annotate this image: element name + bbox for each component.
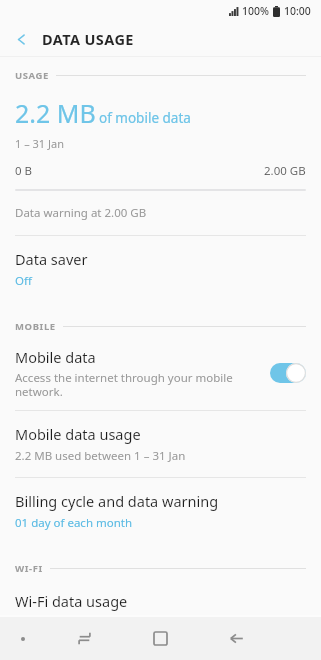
staticText: 01 day of each month — [15, 515, 133, 531]
staticText: Wi-Fi data usage — [15, 591, 128, 611]
staticText: Access the internet through your mobile … — [15, 370, 256, 399]
staticText: 10:00 — [284, 4, 311, 18]
button[interactable]: Home — [122, 617, 198, 660]
staticText: of mobile data — [99, 109, 191, 127]
staticText: Data saver — [15, 249, 88, 269]
button[interactable]: Mobile data — [0, 336, 321, 410]
button[interactable]: Back — [8, 25, 36, 53]
staticText: 1.5 GB used between 6 Dec 2018 – 3 Jan 2… — [15, 615, 259, 631]
button[interactable]: Data saver — [0, 236, 321, 302]
button[interactable]: Wi-Fi data usage — [0, 578, 321, 644]
staticText: 100% — [242, 4, 269, 18]
staticText: DATA USAGE — [42, 29, 134, 49]
button[interactable]: Billing cycle and data warning — [0, 478, 321, 544]
staticText: WI-FI — [15, 562, 43, 575]
staticText: 0 B — [15, 163, 33, 179]
staticText: 2.2 MB used between 1 – 31 Jan — [15, 448, 186, 464]
staticText: 2.2 MB — [15, 96, 96, 130]
staticText: Mobile data usage — [15, 424, 141, 444]
staticText: Billing cycle and data warning — [15, 491, 219, 511]
staticText: 2.00 GB — [264, 163, 306, 179]
staticText: 1 – 31 Jan — [15, 136, 64, 151]
button[interactable]: Recent apps — [46, 617, 122, 660]
staticText: USAGE — [15, 69, 49, 82]
staticText: Mobile data — [15, 347, 96, 367]
staticText: Data warning at 2.00 GB — [15, 205, 147, 221]
button[interactable]: Menu dot — [0, 617, 46, 660]
staticText: Off — [15, 273, 32, 289]
staticText: MOBILE — [15, 320, 56, 333]
button[interactable]: Mobile data usage — [0, 411, 321, 477]
other: Mobile data toggle — [270, 363, 306, 383]
button[interactable]: Back — [198, 617, 274, 660]
